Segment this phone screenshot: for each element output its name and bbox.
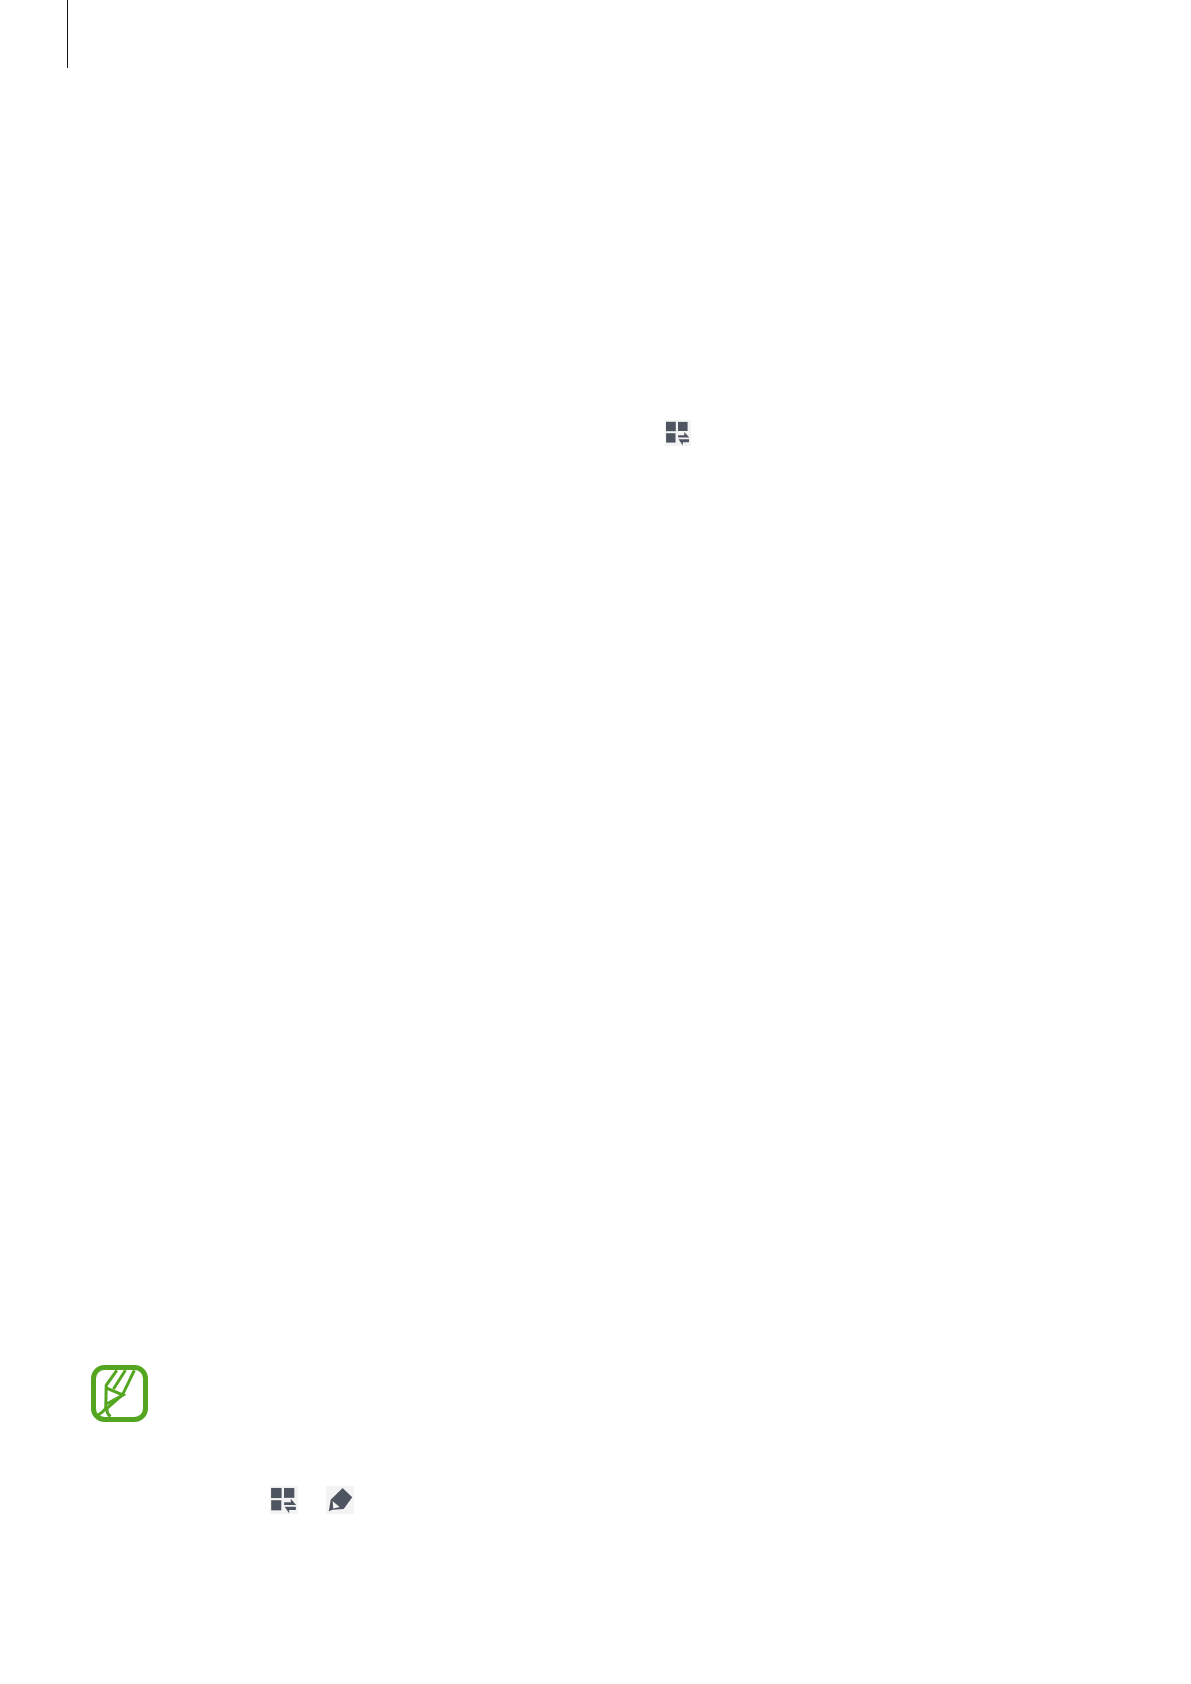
button[interactable]: Edit: [326, 1486, 354, 1514]
button[interactable]: S Note: [91, 1365, 148, 1422]
button[interactable]: Change layout: [270, 1486, 298, 1514]
button[interactable]: Change layout: [665, 420, 691, 446]
